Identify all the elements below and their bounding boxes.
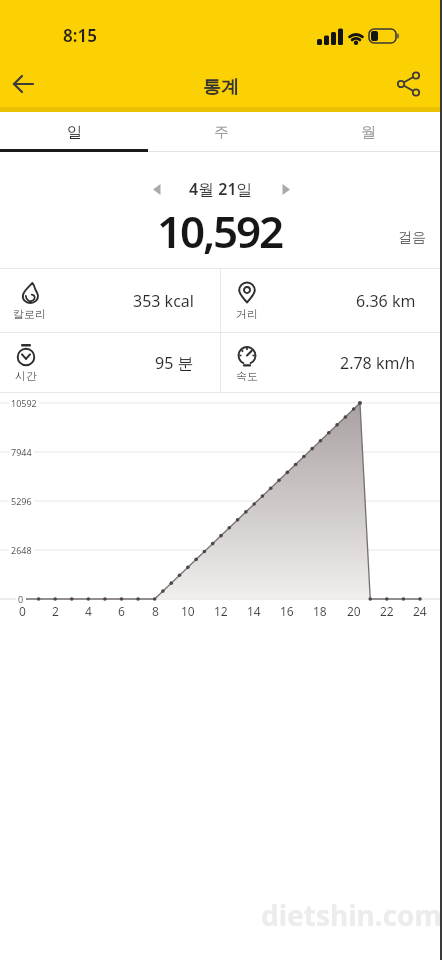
staticText: 0 — [18, 593, 24, 605]
staticText: 0 — [19, 603, 26, 619]
staticText: 통계 — [203, 76, 239, 99]
button[interactable]: 속도 — [221, 333, 442, 392]
staticText: 22 — [380, 603, 394, 619]
button[interactable]: 시간 — [0, 333, 220, 392]
button[interactable]: 칼로리 — [0, 269, 220, 332]
staticText: 걸음 — [398, 229, 426, 247]
staticText: 거리 — [236, 307, 258, 321]
staticText: 2648 — [11, 544, 32, 556]
staticText: 8:15 — [63, 24, 97, 47]
staticText: 8 — [152, 603, 159, 619]
staticText: 7944 — [11, 446, 32, 458]
staticText: 10 — [181, 603, 195, 619]
staticText: 칼로리 — [13, 307, 46, 321]
staticText: 주 — [214, 123, 229, 142]
button[interactable] — [271, 175, 299, 203]
button[interactable]: 일 — [0, 112, 148, 152]
button[interactable]: 주 — [148, 112, 295, 152]
staticText: 6.36 km — [356, 290, 416, 312]
staticText: 2.78 km/h — [340, 352, 416, 374]
staticText: 4월 21일 — [189, 178, 253, 200]
button[interactable]: 거리 — [221, 269, 442, 332]
staticText: dietshin.com — [261, 896, 442, 934]
staticText: 4 — [85, 603, 92, 619]
button[interactable] — [6, 66, 42, 102]
staticText: 20 — [347, 603, 361, 619]
staticText: 24 — [413, 603, 427, 619]
staticText: 353 kcal — [133, 290, 194, 312]
staticText: 14 — [247, 603, 261, 619]
button[interactable] — [396, 71, 422, 97]
staticText: 95 분 — [155, 352, 194, 374]
staticText: 속도 — [236, 369, 258, 383]
button[interactable]: 월 — [295, 112, 442, 152]
staticText: 일 — [67, 123, 82, 142]
button[interactable] — [143, 175, 171, 203]
staticText: 18 — [313, 603, 327, 619]
staticText: 시간 — [15, 369, 37, 383]
staticText: 월 — [361, 123, 376, 142]
staticText: 5296 — [11, 495, 32, 507]
staticText: 6 — [118, 603, 125, 619]
staticText: 12 — [214, 603, 228, 619]
staticText: 16 — [280, 603, 294, 619]
staticText: 2 — [52, 603, 59, 619]
staticText: 10592 — [11, 397, 37, 409]
staticText: 10,592 — [157, 201, 282, 261]
